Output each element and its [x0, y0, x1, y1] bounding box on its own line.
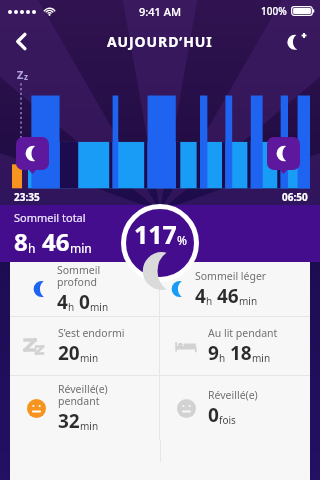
staticText: min [80, 351, 99, 365]
staticText: 4 [57, 289, 68, 315]
staticText: z [24, 71, 28, 82]
staticText: 46 [217, 283, 239, 309]
staticText: min [80, 419, 99, 433]
staticText: min [252, 351, 271, 365]
button[interactable]: Réveillé(e) pendant [10, 376, 159, 440]
button[interactable]: Au lit pendant [160, 317, 310, 375]
button[interactable]: Back [0, 22, 42, 60]
staticText: 8 [14, 225, 28, 258]
staticText: Sommeil profond [57, 263, 101, 289]
button[interactable]: Add sleep session [274, 22, 320, 60]
staticText: min [70, 240, 92, 256]
staticText: h [206, 294, 213, 308]
staticText: Réveillé(e) pendant [58, 382, 108, 408]
staticText: 9 [208, 340, 219, 366]
staticText: 06:50 [282, 190, 308, 204]
staticText: % [177, 232, 187, 248]
staticText: 9:41 AM [139, 4, 182, 19]
staticText: min [90, 300, 109, 314]
staticText: 0 [79, 289, 90, 315]
staticText: AUJOURD’HUI [107, 32, 213, 51]
staticText: Au lit pendant [208, 326, 278, 340]
staticText: fois [219, 413, 236, 427]
staticText: Z [17, 67, 24, 82]
staticText: Sommeil total [14, 210, 86, 225]
button[interactable]: S’est endormi [10, 317, 159, 375]
button[interactable]: Sommeil léger [160, 262, 310, 316]
staticText: 46 [42, 225, 70, 258]
staticText: h [219, 351, 226, 365]
button[interactable]: Réveillé(e) [160, 376, 310, 440]
staticText: 32 [58, 408, 80, 434]
staticText: 18 [230, 340, 252, 366]
staticText: 20 [58, 340, 80, 366]
staticText: Sommeil léger [195, 269, 267, 283]
staticText: h [28, 240, 36, 256]
staticText: 4 [195, 283, 206, 309]
staticText: 100% [261, 4, 287, 18]
staticText: 0 [208, 402, 219, 428]
button[interactable]: Sommeil profond [10, 262, 159, 316]
staticText: S’est endormi [58, 326, 125, 340]
staticText: 117 [134, 217, 177, 251]
staticText: h [68, 300, 75, 314]
staticText: 23:35 [14, 190, 40, 204]
staticText: Réveillé(e) [208, 388, 258, 402]
staticText: min [239, 294, 258, 308]
